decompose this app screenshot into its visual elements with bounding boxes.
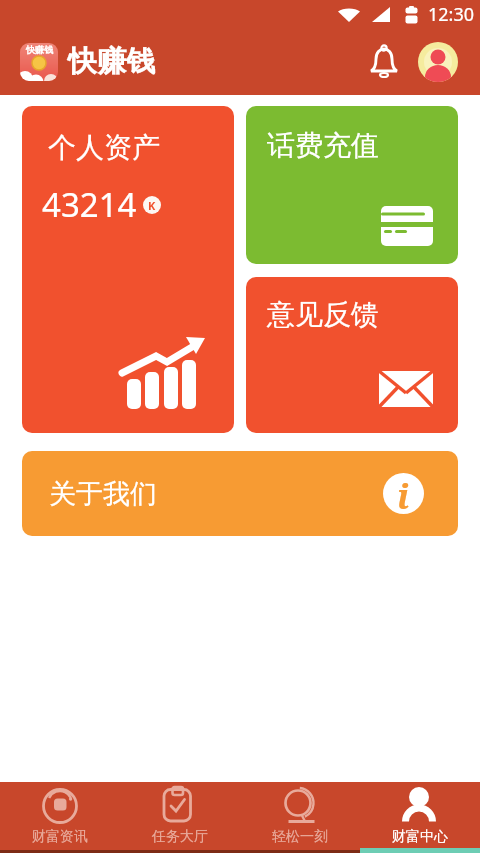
staticText: 轻松一刻 <box>272 828 328 846</box>
button[interactable] <box>418 42 458 82</box>
button[interactable]: 意见反馈 <box>246 277 458 433</box>
button[interactable]: 财富中心 <box>360 782 480 853</box>
staticText: 43214 <box>42 182 137 227</box>
staticText: i <box>397 473 410 514</box>
button[interactable]: 财富资讯 <box>0 782 120 853</box>
staticText: 话费充值 <box>267 128 379 163</box>
staticText: K <box>148 198 156 213</box>
staticText: 关于我们 <box>49 477 157 511</box>
button[interactable]: 任务大厅 <box>120 782 240 853</box>
staticText: 财富中心 <box>392 828 448 846</box>
staticText: 个人资产 <box>48 130 160 165</box>
button[interactable]: 关于我们 <box>22 451 458 536</box>
button[interactable] <box>362 40 406 84</box>
button[interactable]: 轻松一刻 <box>240 782 360 853</box>
button[interactable]: 话费充值 <box>246 106 458 264</box>
staticText: 任务大厅 <box>152 828 208 846</box>
staticText: 快赚钱 <box>68 43 155 80</box>
staticText: 意见反馈 <box>267 297 379 332</box>
button[interactable]: 个人资产 <box>22 106 234 433</box>
staticText: 财富资讯 <box>32 828 88 846</box>
staticText: 12:30 <box>428 2 475 27</box>
staticText: 快赚钱 <box>26 44 53 55</box>
